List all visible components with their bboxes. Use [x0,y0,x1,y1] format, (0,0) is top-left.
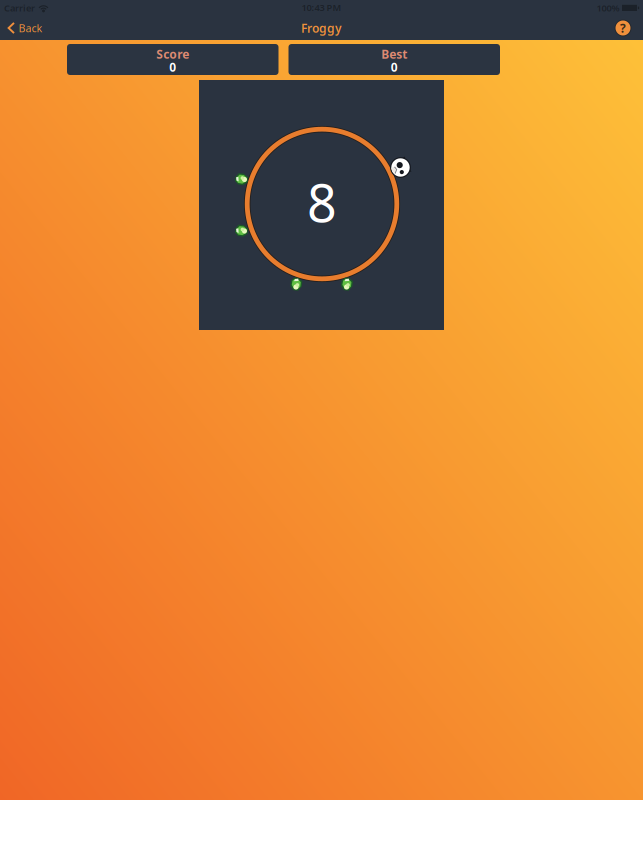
staticText: Back [18,21,42,35]
staticText: 0 [391,59,398,75]
staticText: Froggy [301,20,342,36]
button[interactable]: Help [611,16,635,40]
staticText: ? [620,20,626,36]
button[interactable]: Score [67,44,278,75]
staticText: 0 [169,59,176,75]
staticText: Carrier [4,2,35,14]
button[interactable]: Back [2,16,50,40]
staticText: 8 [307,167,337,237]
staticText: 10:43 PM [301,1,341,14]
staticText: Score [156,46,189,62]
staticText: 100% [596,2,619,14]
staticText: Best [381,46,407,62]
button[interactable]: Best [288,44,500,75]
